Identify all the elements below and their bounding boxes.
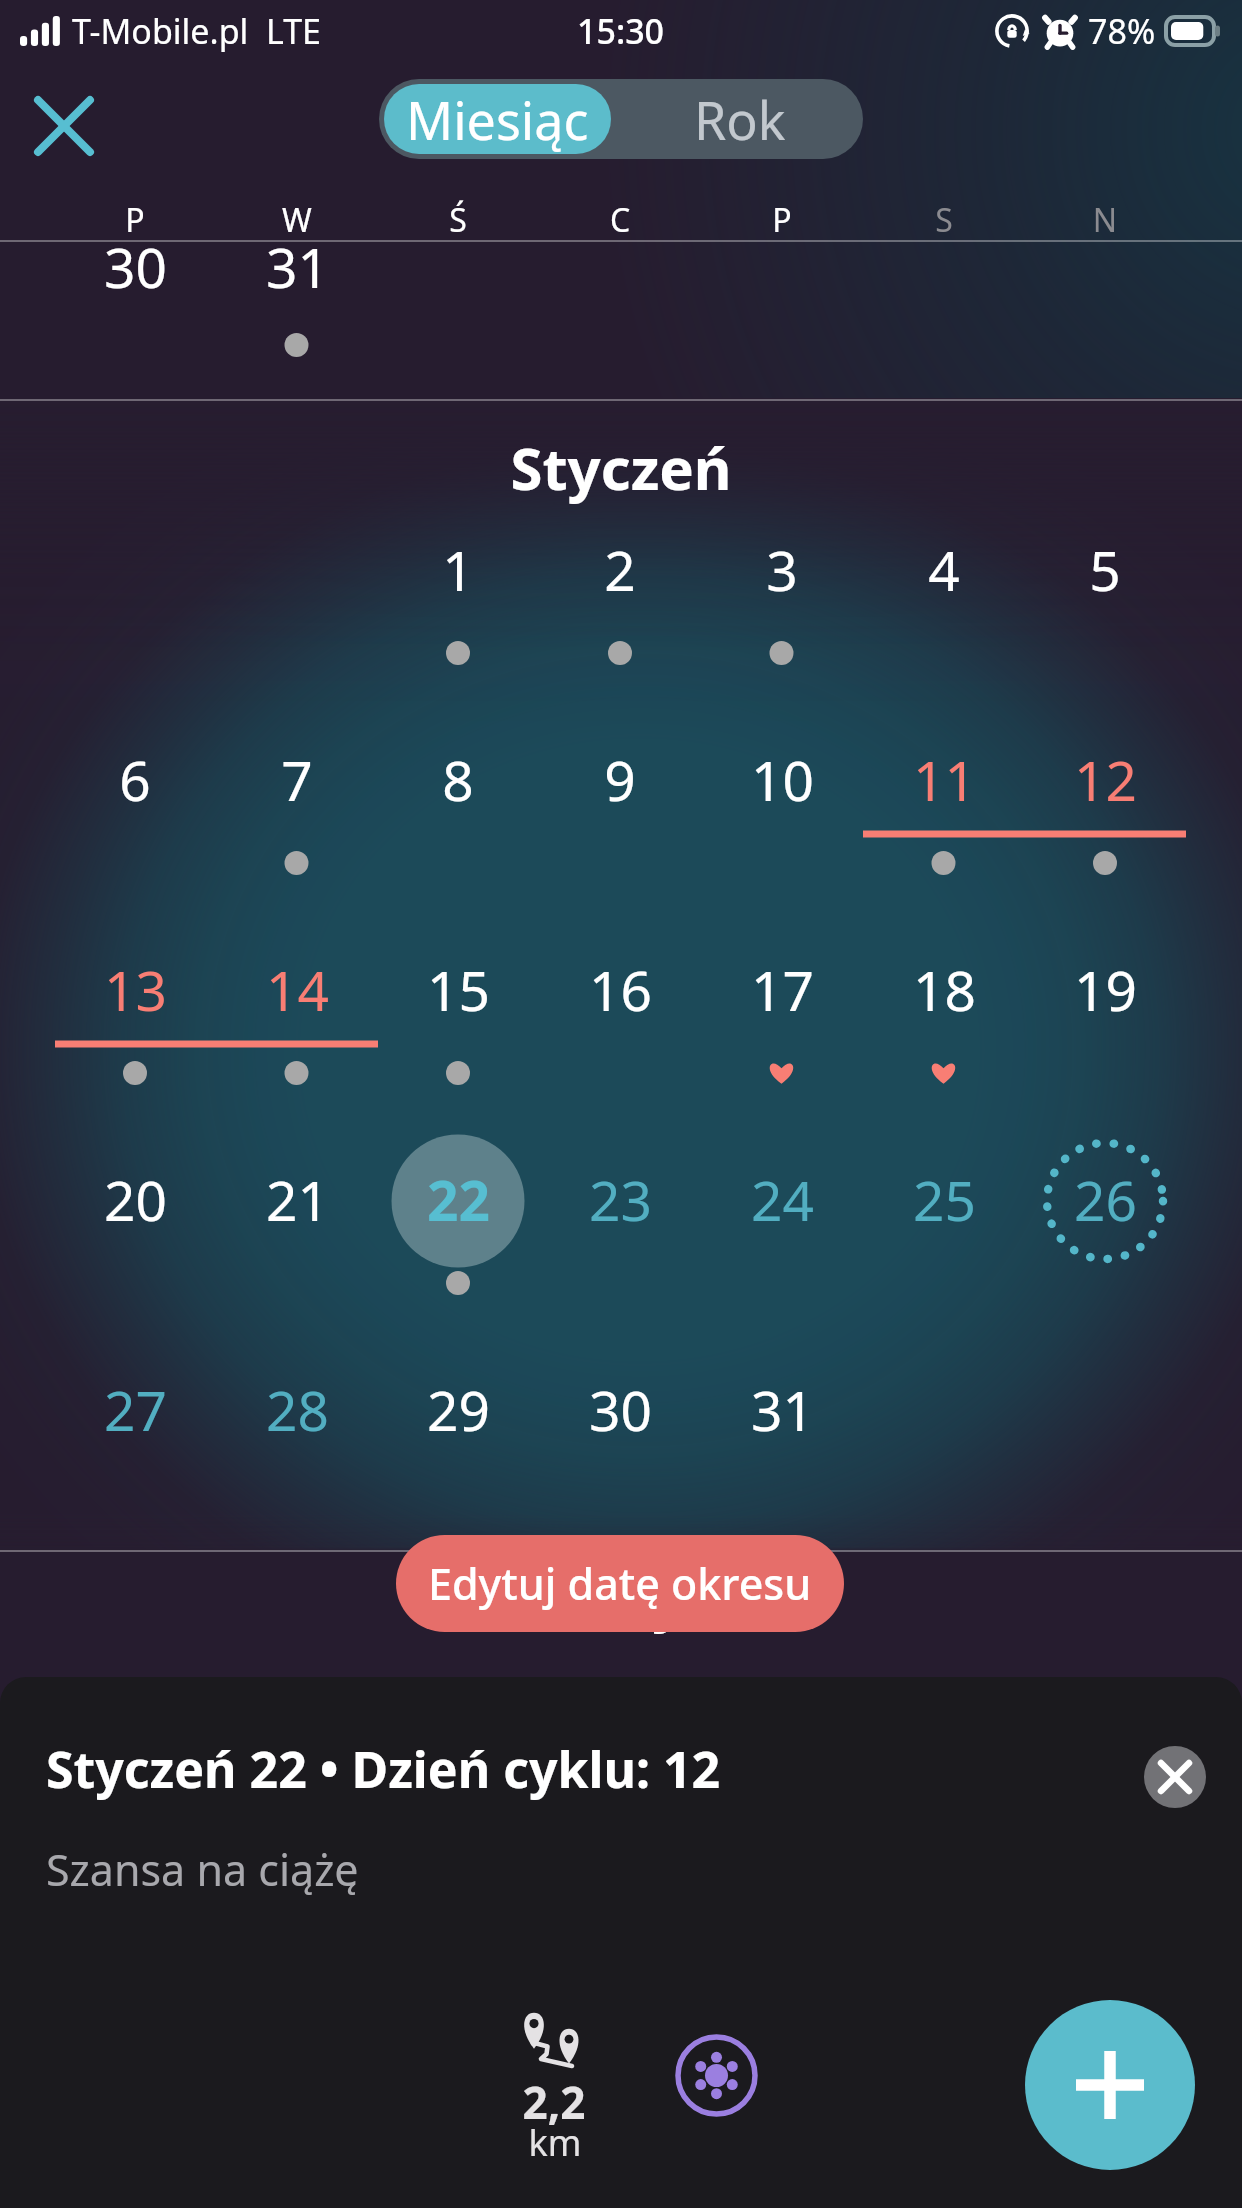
staticText: 6 [119, 742, 151, 817]
staticText: 19 [1074, 952, 1137, 1027]
button[interactable]: 5 [1025, 503, 1185, 678]
staticText: 29 [427, 1372, 490, 1447]
staticText: Rok [694, 84, 786, 155]
staticText: 10 [751, 742, 814, 817]
staticText: 15 [427, 952, 490, 1027]
staticText: 28 [266, 1372, 329, 1447]
button[interactable]: 27 [55, 1343, 215, 1518]
button[interactable]: 29 [378, 1343, 538, 1518]
staticText: 12 [1074, 742, 1137, 817]
staticText: Ś [418, 198, 498, 242]
staticText: 16 [589, 952, 652, 1027]
staticText: 9 [604, 742, 636, 817]
staticText: Luty [0, 1558, 1242, 1637]
staticText: 23 [589, 1162, 652, 1237]
button[interactable]: 31 [217, 229, 377, 398]
button[interactable]: Close [20, 82, 108, 170]
staticText: km [470, 2118, 640, 2167]
staticText: C [580, 198, 660, 242]
button[interactable]: Rok [616, 79, 863, 159]
button[interactable]: 14 [217, 923, 377, 1098]
staticText: 17 [751, 952, 814, 1027]
staticText: N [1065, 198, 1145, 242]
button[interactable]: 26 [1025, 1133, 1185, 1308]
button[interactable]: 1 [378, 503, 538, 678]
staticText: 24 [751, 1162, 814, 1237]
staticText: S [904, 198, 984, 242]
button[interactable]: 2 [540, 503, 700, 678]
button[interactable]: Distance 2,2 km [470, 1992, 640, 2192]
staticText: 15:30 [577, 8, 665, 54]
staticText: 2,2 [469, 2072, 639, 2132]
button[interactable]: 30 [540, 1343, 700, 1518]
button[interactable]: 3 [702, 503, 862, 678]
button[interactable]: 10 [702, 713, 862, 888]
button[interactable]: Cycle insights [661, 2020, 772, 2131]
button[interactable]: 11 [864, 713, 1024, 888]
button[interactable]: 9 [540, 713, 700, 888]
staticText: Edytuj datę okresu [428, 1554, 812, 1613]
button[interactable]: 6 [55, 713, 215, 888]
button[interactable]: 4 [864, 503, 1024, 678]
button[interactable]: 17 [702, 923, 862, 1098]
button[interactable]: 28 [217, 1343, 377, 1518]
button[interactable]: 20 [55, 1133, 215, 1308]
staticText: 7 [281, 742, 313, 817]
staticText: P [742, 198, 822, 242]
button[interactable]: 22 [378, 1133, 538, 1308]
staticText: 22 [427, 1162, 490, 1237]
staticText: 3 [766, 532, 798, 607]
button[interactable]: Dismiss [1144, 1746, 1206, 1808]
staticText: 31 [266, 229, 329, 304]
staticText: 13 [104, 952, 167, 1027]
button[interactable]: Miesiąc [384, 84, 611, 154]
button[interactable]: 7 [217, 713, 377, 888]
staticText: 1 [442, 532, 474, 607]
button[interactable]: 23 [540, 1133, 700, 1308]
button[interactable]: 24 [702, 1133, 862, 1308]
staticText: 11 [913, 742, 976, 817]
button[interactable]: 8 [378, 713, 538, 888]
staticText: 30 [589, 1372, 652, 1447]
staticText: Styczeń 22 • Dzień cyklu: 12 [46, 1735, 721, 1803]
button[interactable]: Add [1025, 2000, 1195, 2170]
button[interactable]: 21 [217, 1133, 377, 1308]
button[interactable]: 30 [55, 229, 215, 398]
staticText: Styczeń [0, 428, 1242, 507]
staticText: 30 [104, 229, 167, 304]
staticText: 78% [1088, 8, 1156, 54]
staticText: 5 [1089, 532, 1121, 607]
staticText: 20 [104, 1162, 167, 1237]
staticText: T-Mobile.pl LTE [72, 8, 321, 54]
staticText: Szansa na ciążę [46, 1840, 359, 1899]
staticText: 4 [928, 532, 960, 607]
staticText: 8 [442, 742, 474, 817]
staticText: 25 [913, 1162, 976, 1237]
button[interactable]: 12 [1025, 713, 1185, 888]
button[interactable]: 25 [864, 1133, 1024, 1308]
staticText: 27 [104, 1372, 167, 1447]
staticText: 21 [266, 1162, 329, 1237]
staticText: 14 [266, 952, 329, 1027]
button[interactable]: 31 [702, 1343, 862, 1518]
staticText: 18 [913, 952, 976, 1027]
staticText: P [95, 198, 175, 242]
button[interactable]: 15 [378, 923, 538, 1098]
staticText: W [257, 198, 337, 242]
staticText: 26 [1074, 1162, 1137, 1237]
button[interactable]: 19 [1025, 923, 1185, 1098]
button[interactable]: Edytuj datę okresu [396, 1535, 844, 1632]
button[interactable]: 13 [55, 923, 215, 1098]
button[interactable]: 18 [864, 923, 1024, 1098]
button[interactable]: 16 [540, 923, 700, 1098]
staticText: 2 [604, 532, 636, 607]
staticText: Miesiąc [406, 84, 589, 154]
staticText: 31 [751, 1372, 814, 1447]
